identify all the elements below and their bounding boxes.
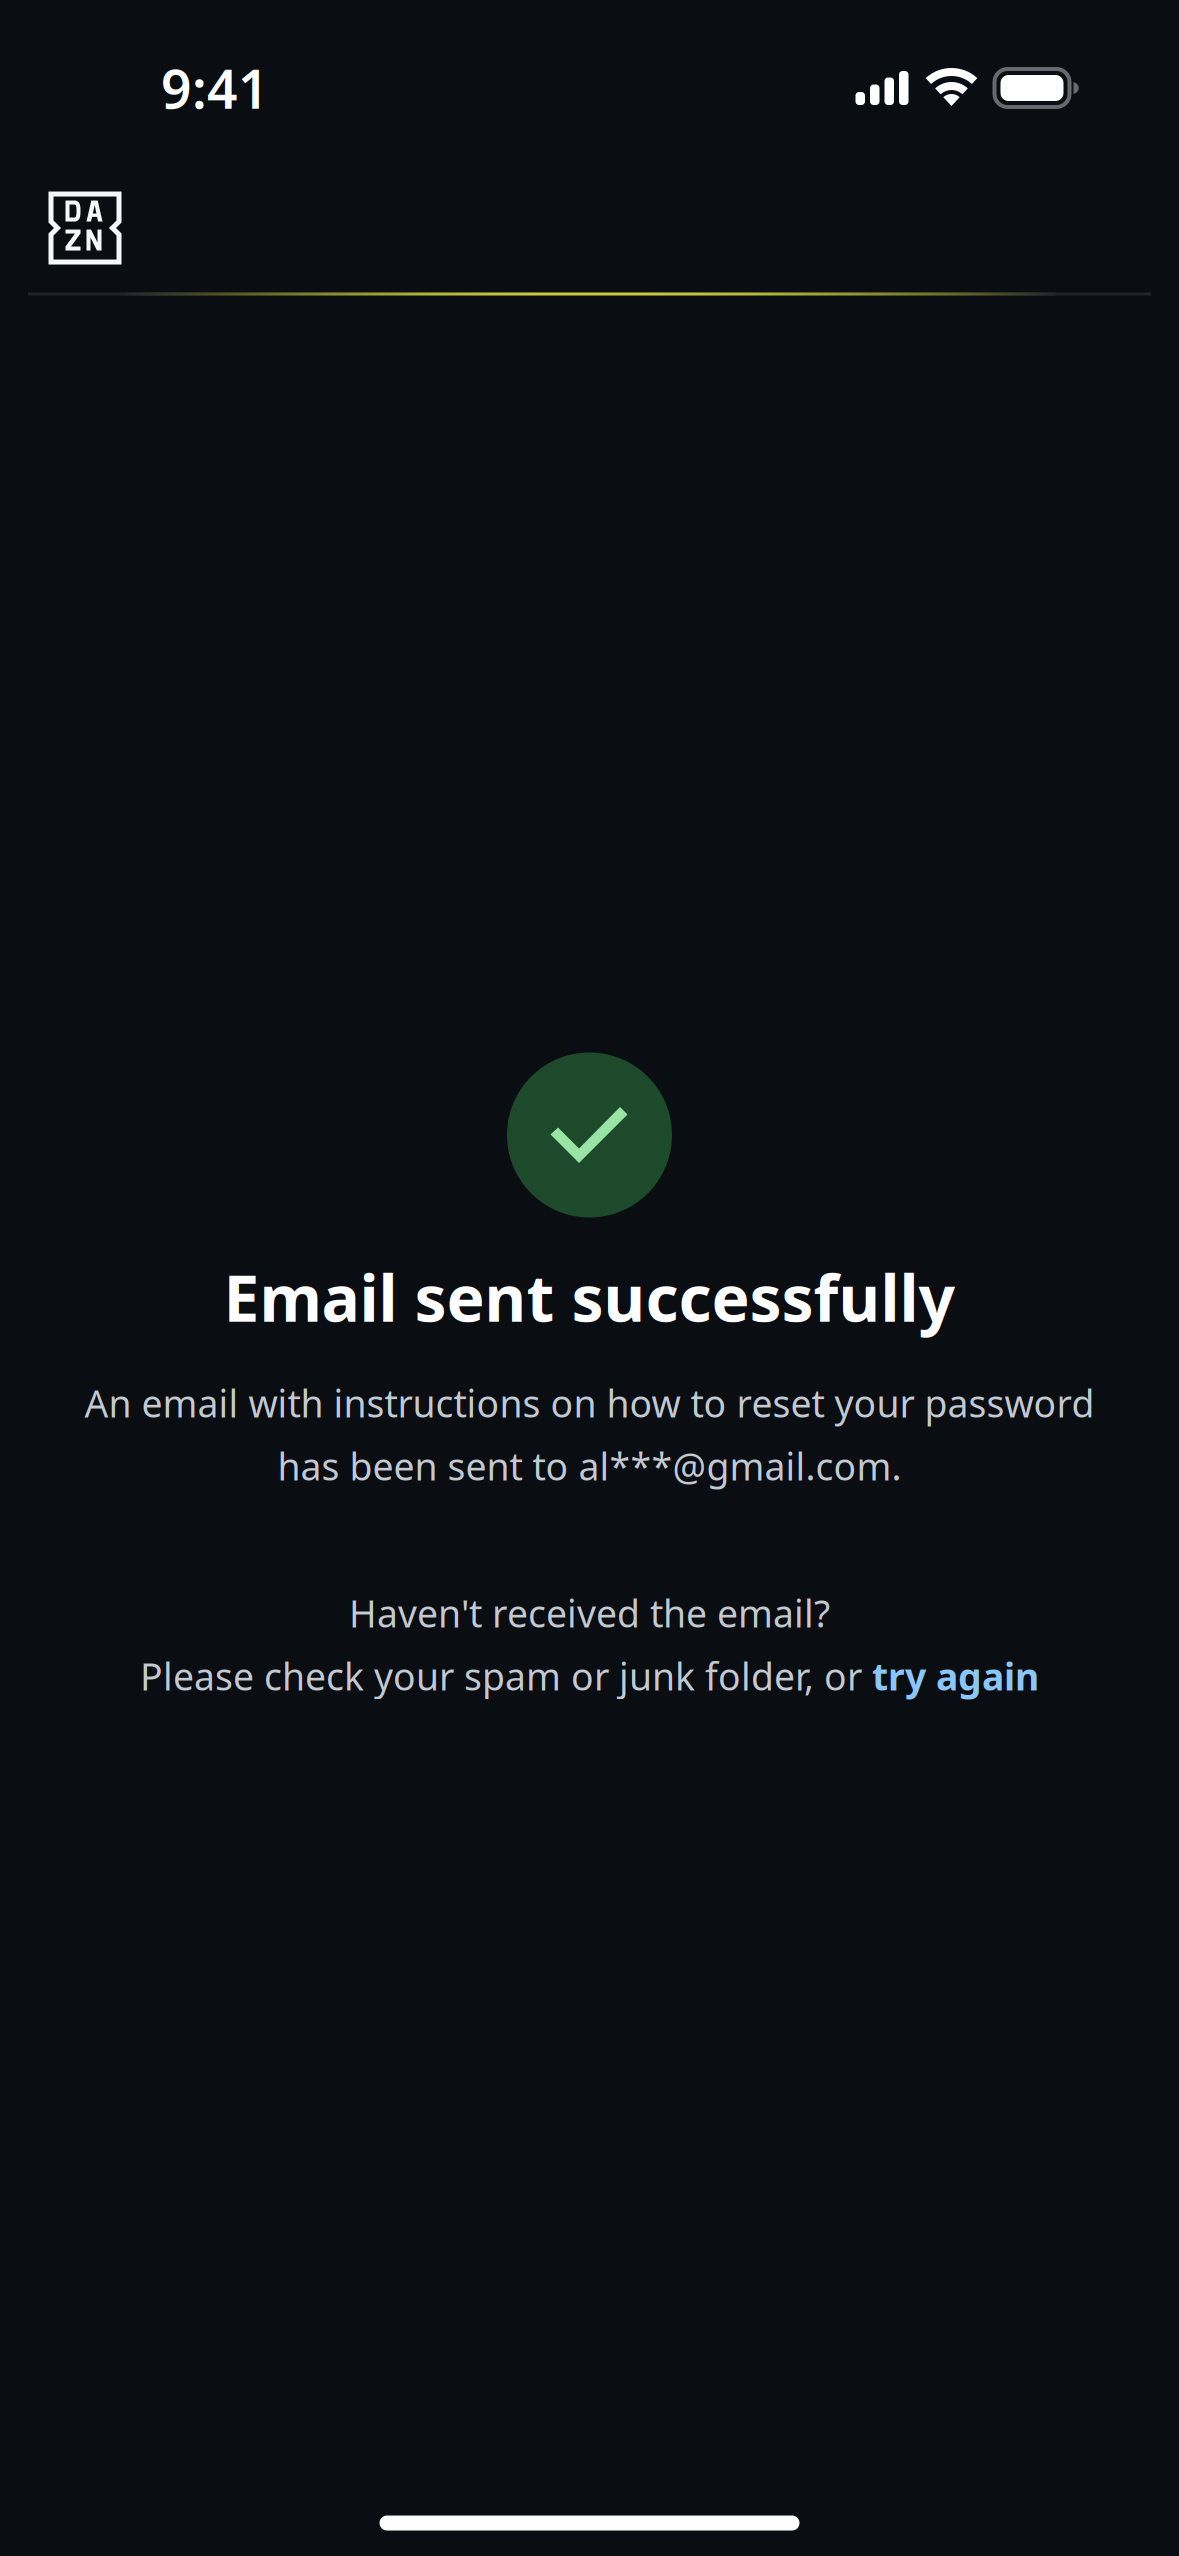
staticText: try again [872,1651,1039,1701]
staticText: Please check your spam or junk folder, o… [140,1651,872,1701]
staticText: Haven't received the email? [349,1588,830,1638]
staticText: Email sent successfully [223,1254,955,1339]
staticText: has been sent to al***@gmail.com. [277,1441,901,1491]
staticText: 9:41 [161,53,269,123]
staticText: An email with instructions on how to res… [84,1378,1094,1428]
button[interactable]: try again [872,1651,1039,1701]
